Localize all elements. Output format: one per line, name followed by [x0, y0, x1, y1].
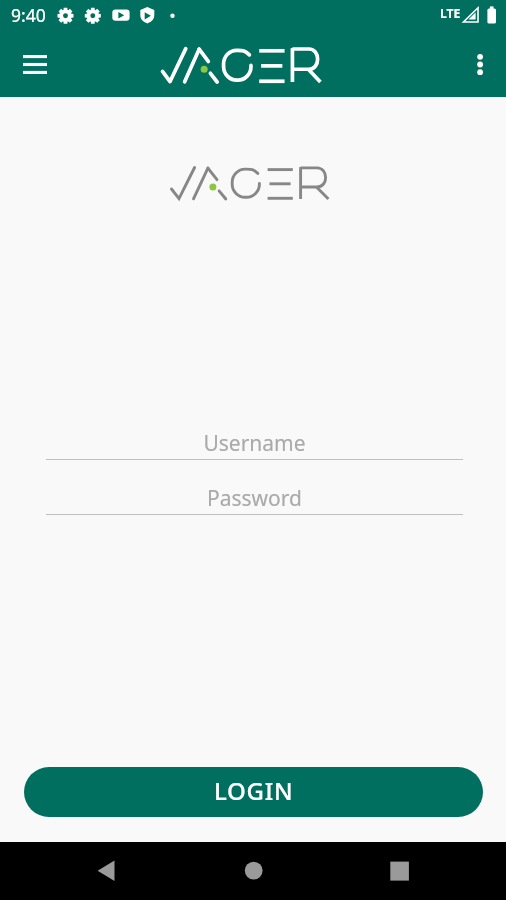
button[interactable]: LOGIN: [24, 767, 483, 817]
button[interactable]: More options: [456, 39, 506, 89]
staticText: LOGIN: [214, 774, 294, 807]
staticText: Password: [207, 484, 302, 513]
staticText: LTE: [440, 5, 461, 21]
button[interactable]: Back: [82, 846, 130, 894]
button[interactable]: Password: [46, 483, 463, 515]
button[interactable]: Home: [230, 846, 278, 894]
staticText: 9:40: [11, 3, 46, 27]
button[interactable]: Menu: [10, 39, 60, 89]
staticText: Username: [203, 429, 306, 458]
button[interactable]: Recents: [376, 846, 424, 894]
button[interactable]: Username: [46, 428, 463, 460]
